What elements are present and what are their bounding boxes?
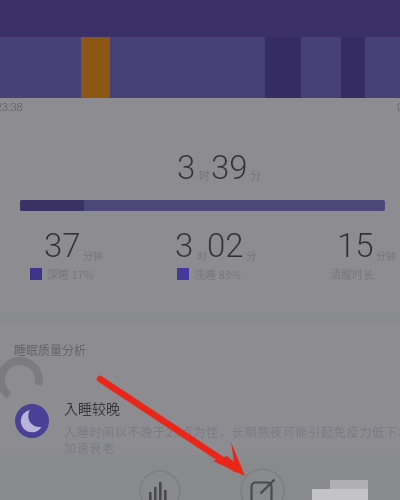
staticText: 入睡较晚: [64, 398, 120, 418]
button[interactable]: 15: [337, 226, 396, 265]
staticText: 睡眠质量分析: [14, 341, 87, 358]
staticText: 分钟: [83, 248, 103, 262]
staticText: 清醒时长: [330, 266, 374, 282]
button[interactable]: Sleep statistics: [139, 470, 181, 500]
staticText: 37: [44, 226, 81, 265]
staticText: 分: [246, 248, 256, 262]
staticText: 分: [250, 167, 261, 183]
staticText: 时: [199, 167, 210, 183]
staticText: 深睡 17%: [47, 266, 94, 282]
staticText: 分钟: [376, 248, 396, 262]
staticText: 时: [197, 248, 207, 262]
staticText: 02: [207, 226, 244, 265]
button[interactable]: Edit sleep record: [240, 468, 285, 500]
button[interactable]: 3: [175, 226, 256, 265]
staticText: 23:38: [0, 101, 23, 114]
button[interactable]: 37: [44, 226, 103, 265]
staticText: 3: [177, 148, 196, 187]
staticText: 3: [175, 226, 194, 265]
staticText: 15: [337, 226, 374, 265]
staticText: 入睡时间以不晚于23点为佳，长期熬夜可能引起免疫力低下、加速衰老: [64, 423, 400, 456]
staticText: 0: [397, 101, 400, 114]
staticText: 39: [211, 148, 248, 187]
button[interactable]: 入睡较晚: [64, 398, 400, 456]
staticText: 浅睡 83%: [194, 266, 241, 282]
